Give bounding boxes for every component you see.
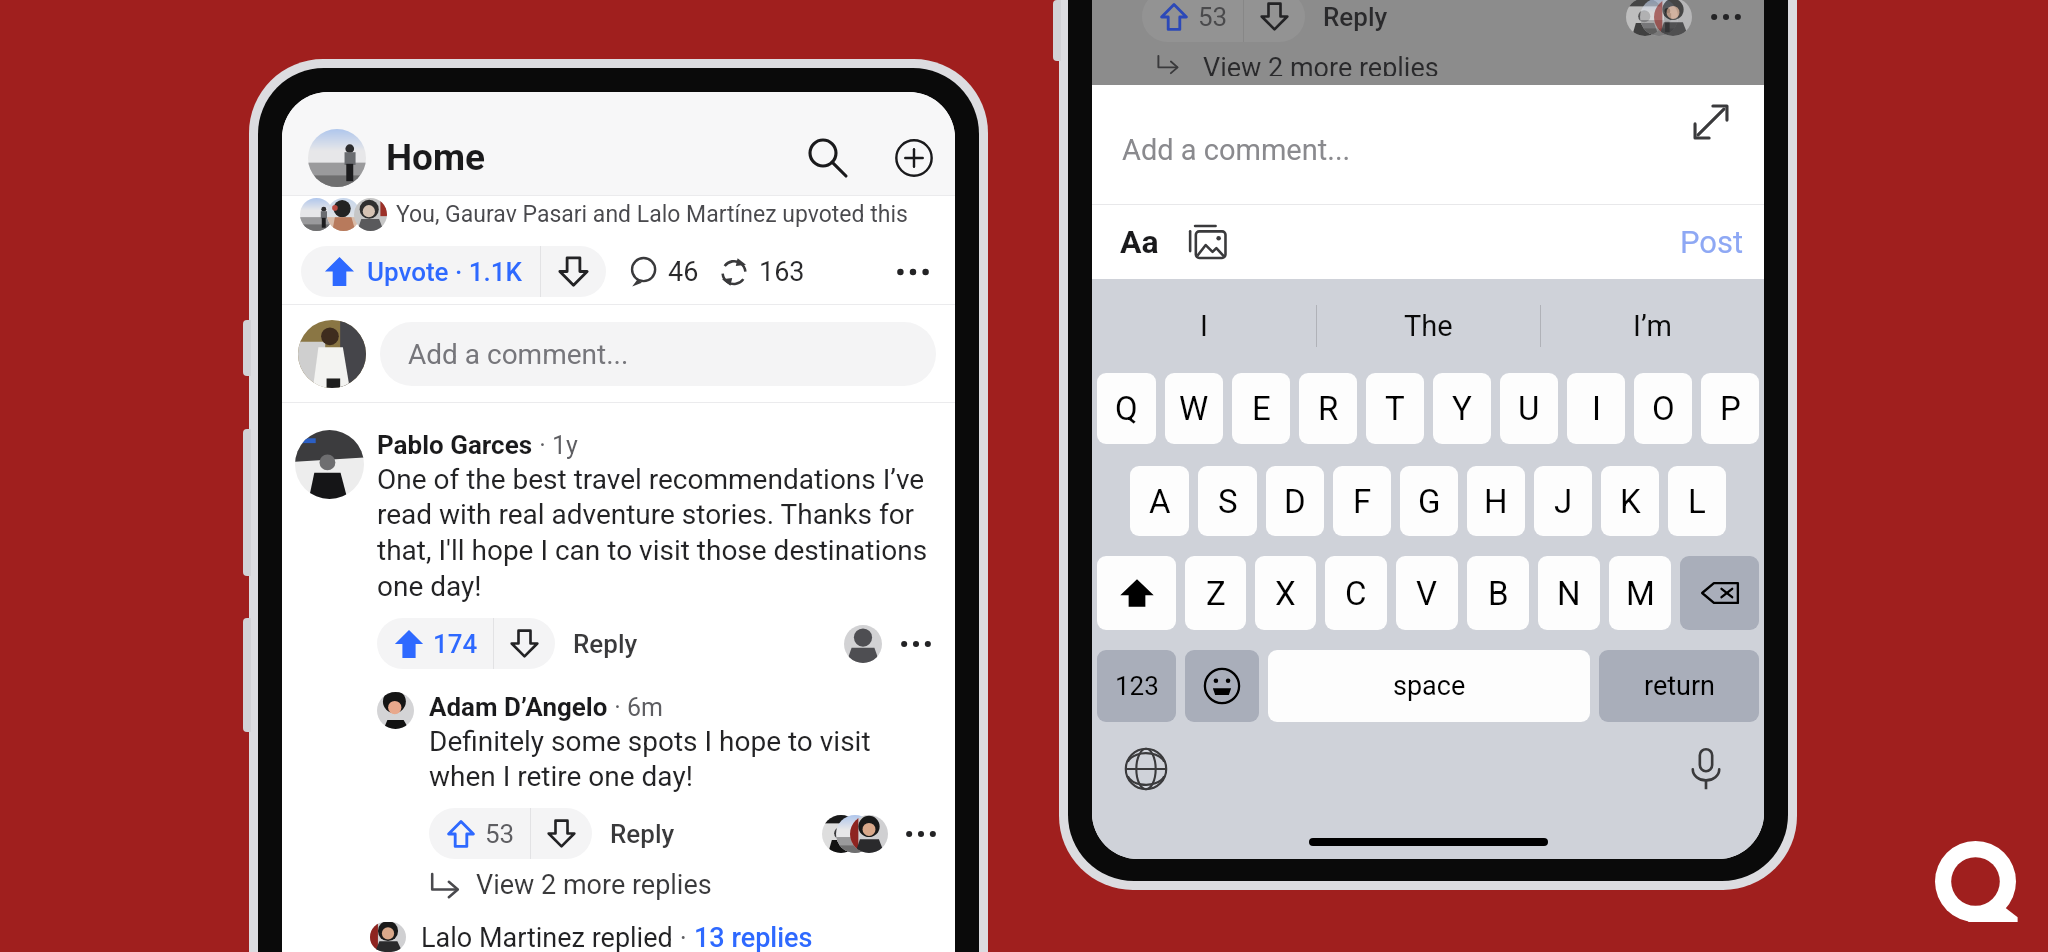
button[interactable]: D — [1266, 466, 1324, 536]
staticText: One of the best travel recommendations I… — [377, 463, 941, 603]
staticText: W — [1179, 389, 1209, 428]
staticText: 123 — [1115, 671, 1159, 701]
button[interactable]: View 2 more replies — [1156, 52, 1439, 76]
staticText: J — [1554, 482, 1573, 521]
button[interactable]: V — [1396, 556, 1458, 630]
button[interactable]: Change language — [1124, 747, 1168, 791]
button[interactable]: I’m — [1541, 279, 1764, 373]
other: Quora — [1935, 841, 2016, 922]
staticText: A — [1149, 482, 1171, 521]
button[interactable]: U — [1500, 373, 1558, 444]
button[interactable]: Aa — [1120, 223, 1159, 261]
button[interactable]: Add image — [1189, 223, 1227, 261]
staticText: I’m — [1633, 309, 1672, 343]
button[interactable]: I — [1567, 373, 1625, 444]
staticText: V — [1416, 574, 1438, 613]
staticText: F — [1353, 482, 1372, 521]
staticText: D — [1284, 482, 1306, 521]
staticText: · 1y — [533, 431, 578, 460]
button[interactable]: Add a comment... — [380, 322, 936, 386]
staticText: 163 — [759, 256, 805, 288]
button[interactable]: Z — [1185, 556, 1246, 630]
button[interactable]: B — [1467, 556, 1529, 630]
button[interactable]: Dictate — [1684, 747, 1728, 791]
staticText: Lalo Martinez replied — [421, 922, 673, 952]
button[interactable]: R — [1299, 373, 1357, 444]
button[interactable]: X — [1255, 556, 1316, 630]
button[interactable]: 174 — [377, 618, 555, 669]
button[interactable]: Reply — [573, 629, 638, 659]
staticText: L — [1688, 482, 1706, 521]
button[interactable]: Shift — [1097, 556, 1176, 630]
button[interactable]: T — [1366, 373, 1424, 444]
staticText: 53 — [485, 819, 515, 849]
staticText: R — [1318, 389, 1339, 428]
button[interactable]: Emoji — [1185, 650, 1259, 722]
staticText: 13 replies — [694, 922, 813, 952]
button[interactable]: 123 — [1097, 650, 1176, 722]
button[interactable]: Post — [1680, 224, 1744, 260]
staticText: O — [1652, 389, 1675, 428]
button[interactable]: P — [1701, 373, 1759, 444]
button[interactable]: More options — [1706, 0, 1746, 37]
button[interactable]: Add a comment... — [1092, 85, 1764, 204]
staticText: Z — [1206, 574, 1226, 613]
button[interactable]: More options — [901, 814, 941, 854]
staticText: Home — [386, 136, 486, 179]
staticText: Pablo Garces — [377, 430, 533, 460]
staticText: 53 — [1198, 2, 1228, 32]
button[interactable]: The — [1317, 279, 1540, 373]
staticText: K — [1620, 482, 1641, 521]
button[interactable]: Expand — [1692, 103, 1730, 141]
staticText: Upvote · 1.1K — [367, 257, 523, 287]
button[interactable]: L — [1668, 466, 1726, 536]
staticText: E — [1252, 389, 1271, 428]
button[interactable]: H — [1467, 466, 1525, 536]
button[interactable]: Lalo Martinez replied — [370, 922, 955, 952]
button[interactable]: 53 — [429, 808, 592, 859]
button[interactable]: S — [1198, 466, 1257, 536]
staticText: Adam D’Angelo — [429, 692, 608, 722]
button[interactable]: C — [1325, 556, 1387, 630]
button[interactable]: A — [1130, 466, 1189, 536]
button[interactable]: 53 — [1142, 0, 1305, 42]
staticText: You, Gaurav Pasari and Lalo Martínez upv… — [396, 201, 908, 228]
button[interactable]: G — [1400, 466, 1458, 536]
button[interactable]: 163 — [719, 256, 805, 288]
button[interactable]: Create post — [886, 130, 942, 186]
button[interactable]: W — [1165, 373, 1223, 444]
button[interactable]: O — [1634, 373, 1692, 444]
button[interactable]: I — [1092, 279, 1316, 373]
button[interactable]: Reply — [1323, 2, 1388, 32]
button[interactable]: N — [1538, 556, 1600, 630]
button[interactable]: E — [1232, 373, 1290, 444]
button[interactable]: Upvote · 1.1K — [301, 246, 606, 297]
staticText: space — [1393, 670, 1466, 702]
button[interactable]: space — [1268, 650, 1590, 722]
button[interactable]: View 2 more replies — [429, 869, 712, 901]
button[interactable]: More — [891, 250, 935, 294]
button[interactable]: Q — [1097, 373, 1156, 444]
staticText: Add a comment... — [408, 338, 629, 371]
staticText: B — [1488, 574, 1509, 613]
button[interactable]: Reply — [610, 819, 675, 849]
staticText: T — [1385, 389, 1405, 428]
button[interactable]: 46 — [628, 256, 699, 288]
button[interactable]: M — [1609, 556, 1671, 630]
staticText: 174 — [433, 629, 478, 659]
staticText: G — [1418, 482, 1441, 521]
staticText: · — [673, 922, 694, 952]
staticText: U — [1518, 389, 1540, 428]
staticText: Add a comment... — [1122, 133, 1351, 167]
button[interactable]: Backspace — [1680, 556, 1759, 630]
button[interactable]: F — [1333, 466, 1391, 536]
button[interactable]: J — [1534, 466, 1592, 536]
button[interactable]: Y — [1433, 373, 1491, 444]
staticText: · 6m — [608, 693, 663, 722]
button[interactable]: Search — [800, 130, 856, 186]
button[interactable]: return — [1599, 650, 1759, 722]
staticText: Q — [1115, 389, 1138, 428]
button[interactable]: K — [1601, 466, 1659, 536]
button[interactable]: More options — [896, 624, 936, 664]
staticText: C — [1345, 574, 1367, 613]
